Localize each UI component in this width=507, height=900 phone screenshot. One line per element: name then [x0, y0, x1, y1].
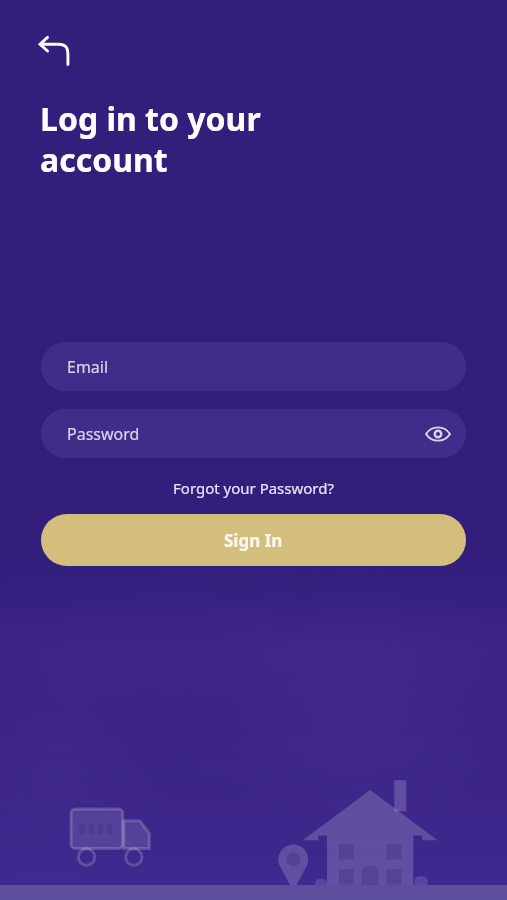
button[interactable]: Show password — [416, 412, 460, 456]
staticText: Email — [67, 356, 109, 378]
staticText: Sign In — [224, 529, 283, 552]
staticText: Forgot your Password? — [173, 478, 334, 498]
button[interactable]: Back — [30, 26, 80, 76]
button[interactable]: Forgot your Password? — [165, 475, 342, 501]
staticText: Password — [67, 423, 140, 445]
button[interactable]: Password — [41, 409, 466, 458]
staticText: Log in to your account — [40, 97, 261, 182]
button[interactable]: Email — [41, 342, 466, 391]
button[interactable]: Sign In — [41, 514, 466, 566]
